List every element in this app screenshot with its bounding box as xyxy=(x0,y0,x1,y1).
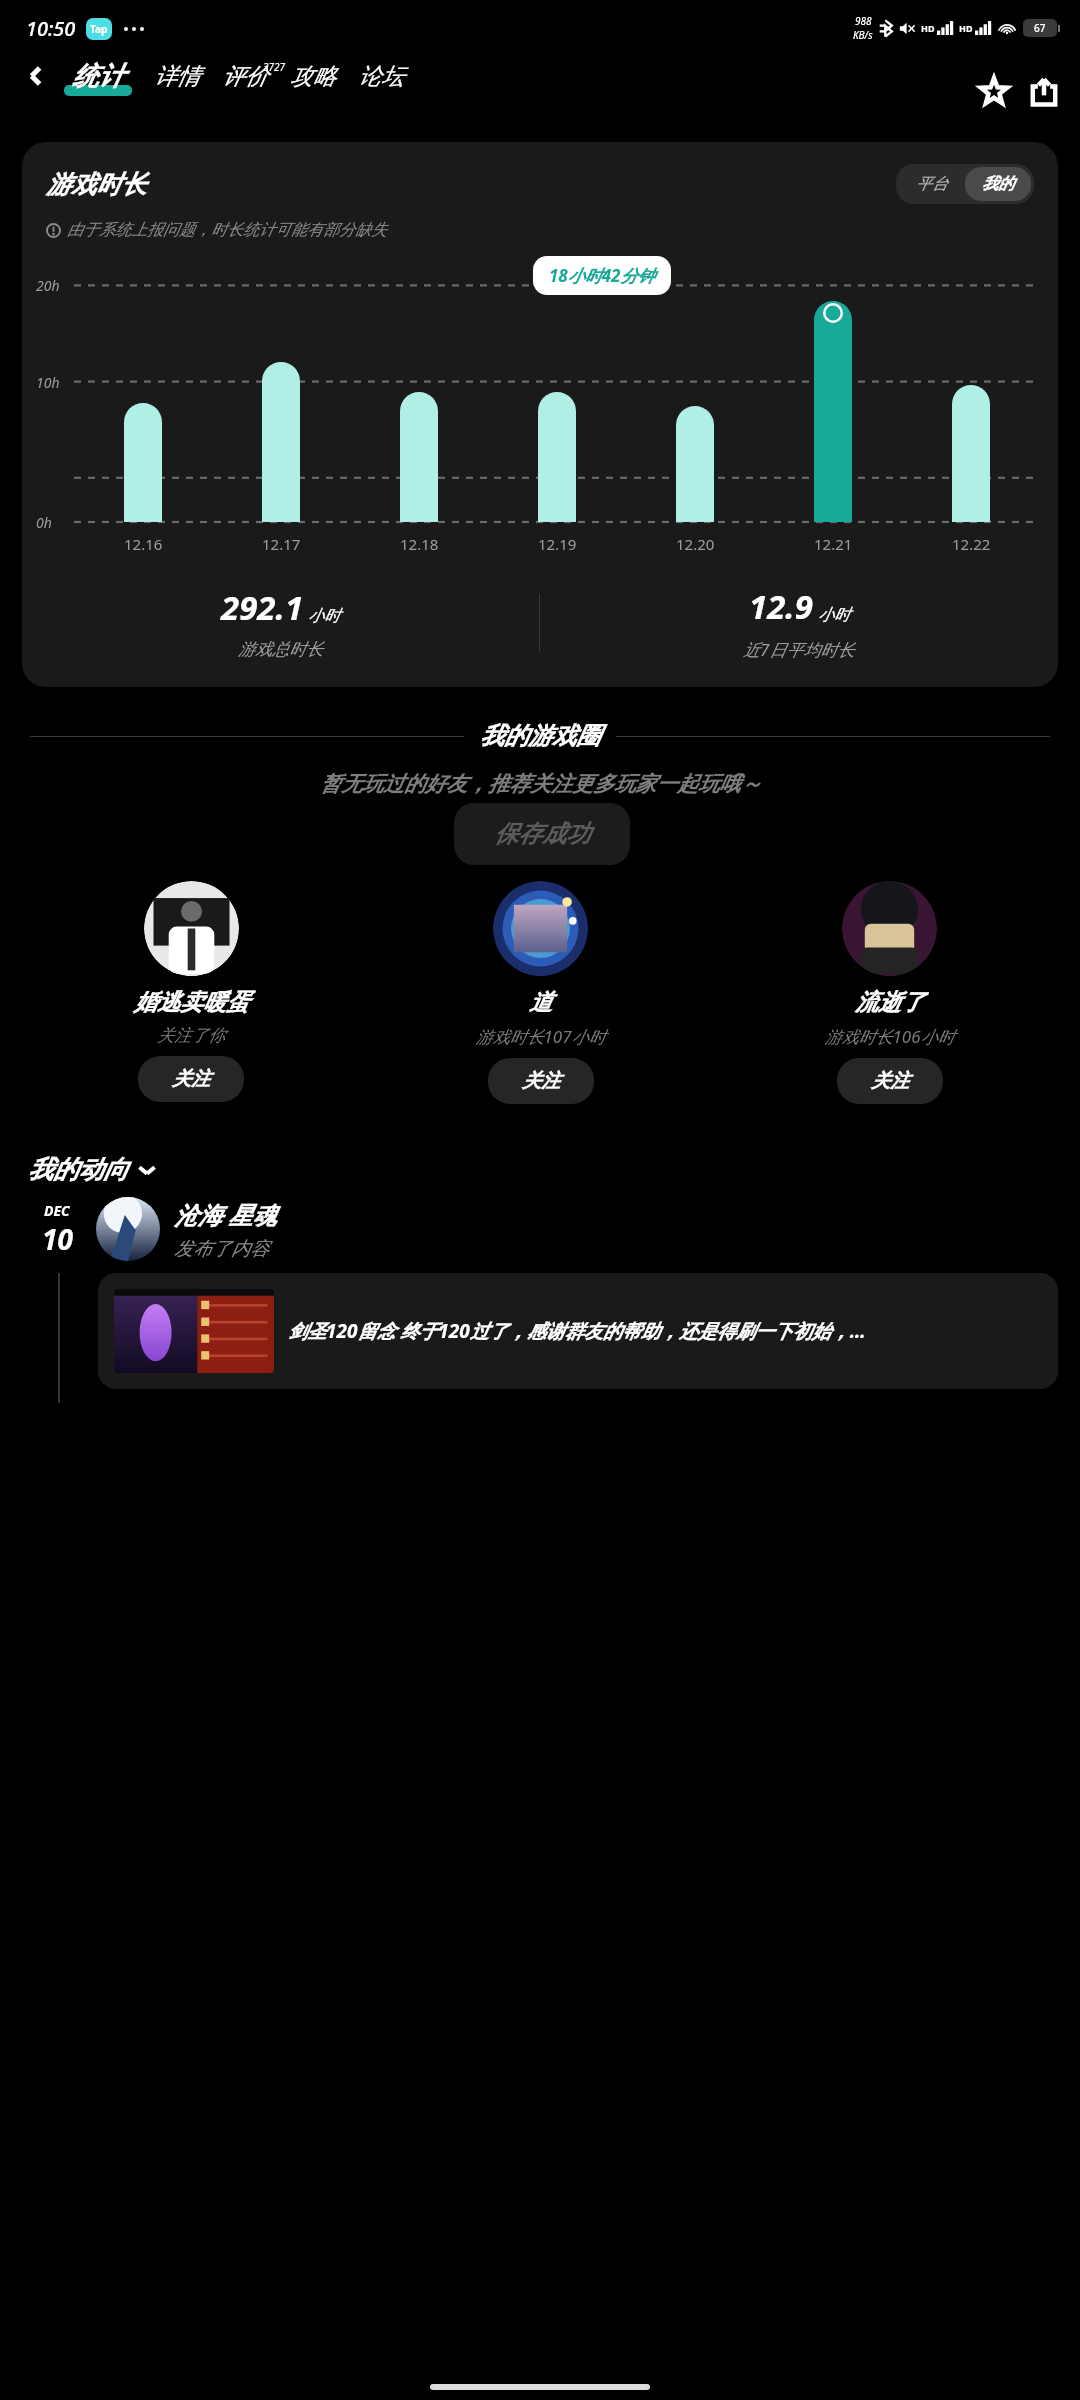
staticText: 关注 xyxy=(172,1067,210,1091)
staticText: 67 xyxy=(1034,21,1046,35)
button[interactable]: 关注 xyxy=(837,1058,943,1104)
staticText: 游戏时长106小时 xyxy=(824,1025,955,1048)
staticText: 流逝了 xyxy=(855,988,924,1017)
staticText: 10h xyxy=(36,373,60,392)
button[interactable]: Back xyxy=(16,56,56,96)
staticText: 我的游戏圈 xyxy=(480,721,600,751)
button[interactable]: 剑圣120留念 终于120过了，感谢群友的帮助，还是得刷一下初始，… xyxy=(98,1273,1058,1389)
staticText: 12.16 xyxy=(124,534,163,554)
staticText: 10:50 xyxy=(26,15,76,42)
staticText: 攻略 xyxy=(290,62,336,91)
staticText: 游戏时长107小时 xyxy=(475,1025,606,1048)
staticText: 由于系统上报问题，时长统计可能有部分缺失 xyxy=(67,220,387,240)
staticText: 12.21 xyxy=(814,534,853,554)
button[interactable] xyxy=(124,403,162,522)
staticText: 小时 xyxy=(308,606,340,626)
button[interactable]: 攻略 xyxy=(288,62,338,91)
staticText: 详情 xyxy=(154,62,200,91)
staticText: 292.1 xyxy=(221,585,304,630)
staticText: HD xyxy=(921,22,935,34)
staticText: 道 xyxy=(529,988,552,1017)
button[interactable]: 婚逃卖暖蛋 xyxy=(144,881,239,976)
staticText: 游戏总时长 xyxy=(238,639,323,660)
staticText: 0h xyxy=(36,513,52,532)
staticText: 评价 xyxy=(222,62,268,91)
staticText: 关注 xyxy=(871,1069,909,1093)
staticText: 12.17 xyxy=(262,534,301,554)
staticText: 988 xyxy=(855,14,872,28)
staticText: 剑圣120留念 终于120过了，感谢群友的帮助，还是得刷一下初始，… xyxy=(288,1318,866,1344)
button[interactable]: Share xyxy=(1022,70,1066,114)
button[interactable]: Favorite xyxy=(972,70,1016,114)
staticText: DEC xyxy=(44,1201,70,1220)
staticText: KB/s xyxy=(853,28,873,42)
staticText: 暂无玩过的好友，推荐关注更多玩家一起玩哦～ xyxy=(320,771,761,797)
staticText: 12.9 xyxy=(749,584,814,629)
button[interactable]: 我的动向 xyxy=(28,1154,1052,1185)
staticText: 我的 xyxy=(982,174,1014,194)
staticText: 论坛 xyxy=(358,62,404,91)
staticText: 关注 xyxy=(522,1069,560,1093)
button[interactable]: 详情 xyxy=(152,62,202,91)
button[interactable]: 统计 xyxy=(62,60,134,93)
button[interactable] xyxy=(676,406,714,522)
button[interactable]: 论坛 xyxy=(356,62,406,91)
staticText: 婚逃卖暖蛋 xyxy=(134,988,249,1017)
staticText: 20h xyxy=(36,276,60,295)
staticText: 关注了你 xyxy=(157,1025,225,1046)
button[interactable] xyxy=(952,385,990,522)
staticText: HD xyxy=(959,22,973,34)
button[interactable]: 道 xyxy=(493,881,588,976)
button[interactable]: Avatar xyxy=(96,1197,160,1261)
staticText: 12.22 xyxy=(952,534,991,554)
staticText: 沧海 星魂 xyxy=(174,1198,277,1231)
button[interactable]: 评价 xyxy=(220,62,270,91)
staticText: 3727 xyxy=(263,60,286,74)
staticText: 12.19 xyxy=(538,534,577,554)
staticText: 12.18 xyxy=(400,534,439,554)
staticText: 游戏时长 xyxy=(46,169,146,200)
staticText: Tap xyxy=(90,22,108,36)
staticText: 平台 xyxy=(916,174,948,194)
button[interactable]: 流逝了 xyxy=(842,881,937,976)
staticText: 18小时42分钟 xyxy=(549,264,655,287)
button[interactable]: 我的 xyxy=(965,167,1031,201)
staticText: 近7日平均时长 xyxy=(743,638,855,661)
button[interactable] xyxy=(814,301,852,522)
staticText: 我的动向 xyxy=(28,1154,128,1185)
staticText: 12.20 xyxy=(676,534,715,554)
staticText: 发布了内容 xyxy=(174,1237,269,1261)
button[interactable]: 关注 xyxy=(138,1056,244,1102)
button[interactable]: 关注 xyxy=(488,1058,594,1104)
staticText: 小时 xyxy=(818,605,850,625)
button[interactable]: 平台 xyxy=(899,167,965,201)
staticText: 10 xyxy=(42,1220,73,1258)
button[interactable] xyxy=(262,362,300,522)
staticText: 保存成功 xyxy=(494,819,590,849)
staticText: 统计 xyxy=(72,60,124,93)
button[interactable] xyxy=(400,392,438,522)
button[interactable] xyxy=(538,392,576,522)
